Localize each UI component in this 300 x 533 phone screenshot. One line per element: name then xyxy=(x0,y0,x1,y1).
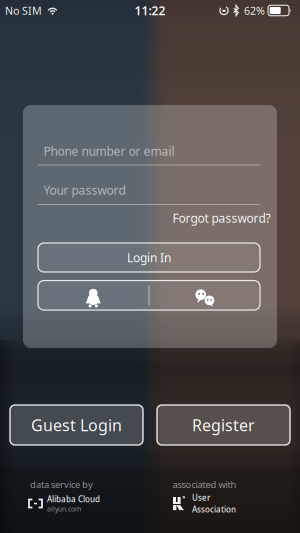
staticText: 11:22 xyxy=(134,2,165,18)
staticText: Register xyxy=(192,414,255,436)
button[interactable]: Register xyxy=(157,405,290,445)
button[interactable]: Guest Login xyxy=(10,405,143,445)
button[interactable]: Your password xyxy=(38,176,260,206)
button[interactable]: Login In xyxy=(38,243,260,272)
staticText: associated with xyxy=(172,478,236,491)
staticText: Association xyxy=(192,504,236,515)
staticText: No SIM xyxy=(5,3,42,18)
staticText: Guest Login xyxy=(31,414,122,436)
button[interactable]: Sign in with WeChat xyxy=(149,281,260,310)
button[interactable]: Phone number or email xyxy=(38,137,260,167)
button[interactable]: Sign in with QQ xyxy=(38,281,148,310)
staticText: Login In xyxy=(127,249,171,265)
staticText: aliyun.com xyxy=(47,504,81,513)
button[interactable]: Forgot password? xyxy=(172,210,270,226)
staticText: data service by xyxy=(30,478,93,491)
staticText: Your password xyxy=(43,182,125,198)
staticText: Phone number or email xyxy=(43,143,174,159)
staticText: 62% xyxy=(244,3,265,18)
staticText: Forgot password? xyxy=(172,210,270,226)
staticText: User xyxy=(192,492,210,503)
staticText: Alibaba Cloud xyxy=(47,494,100,504)
